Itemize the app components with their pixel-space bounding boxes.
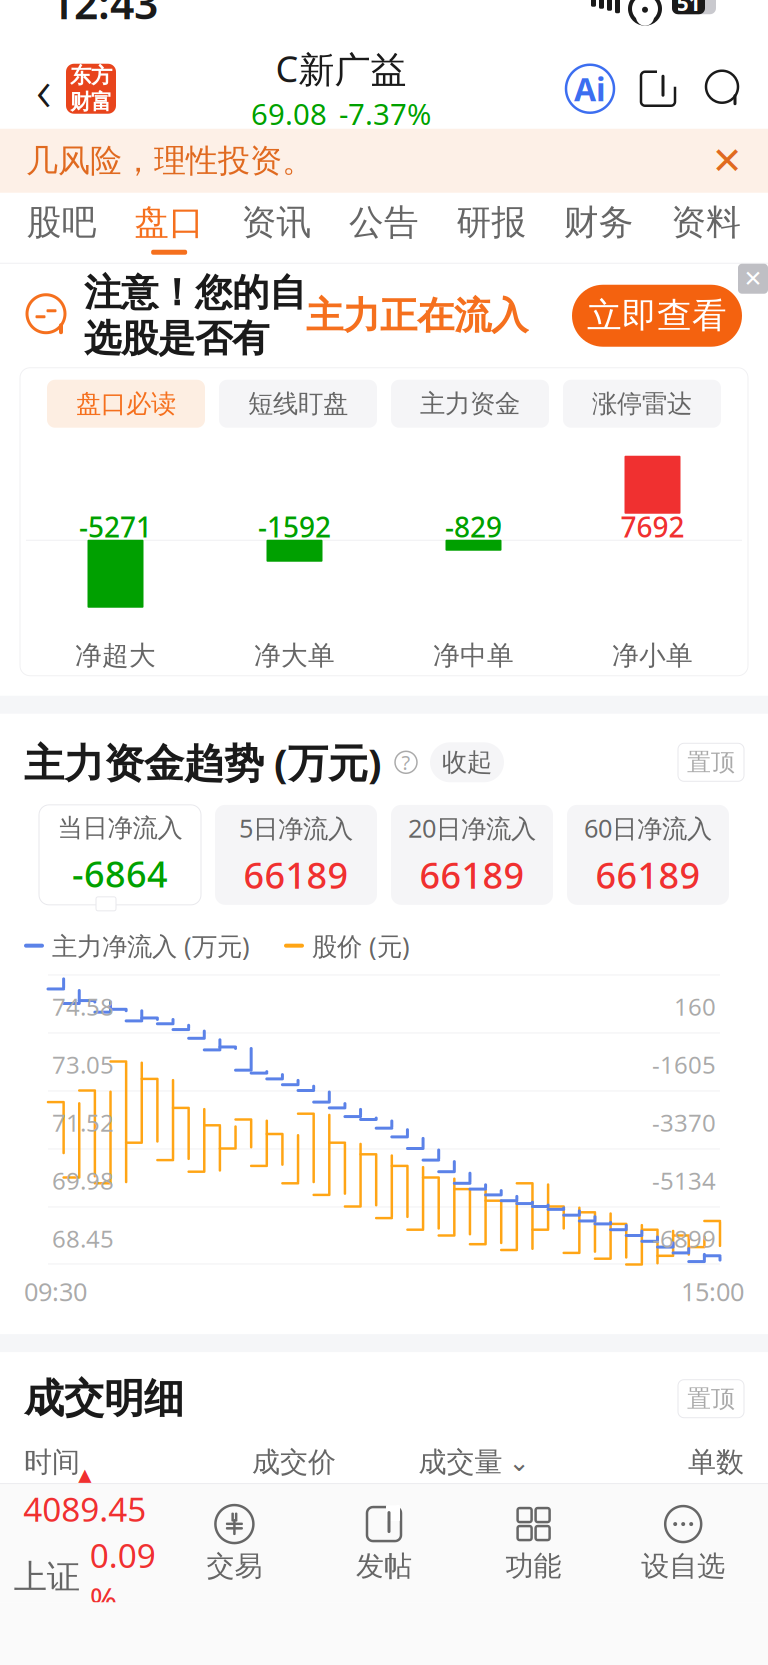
button[interactable]: Back <box>22 61 66 117</box>
staticText: 主力正在流入 <box>306 293 528 339</box>
staticText: 主力资金趋势 (万元) <box>24 736 382 789</box>
staticText: 立即查看 <box>587 294 727 337</box>
staticText: 09:30 <box>24 1274 87 1308</box>
staticText: 73.05 <box>52 1049 114 1080</box>
staticText: 涨停雷达 <box>592 388 692 419</box>
staticText: ▲ <box>78 1465 91 1485</box>
button[interactable]: AI assistant <box>566 65 614 113</box>
staticText: 盘口必读 <box>76 388 176 419</box>
staticText: 66189 <box>243 851 348 899</box>
button[interactable]: 立即查看 <box>572 285 742 347</box>
button[interactable]: ▲ <box>10 1488 160 1598</box>
staticText: 发帖 <box>356 1549 412 1583</box>
staticText: -5134 <box>652 1165 716 1196</box>
staticText: ? <box>401 749 410 776</box>
staticText: 资讯 <box>242 201 312 244</box>
staticText: -6899 <box>652 1223 716 1254</box>
staticText: 注意！您的自选股是否有 <box>84 270 306 362</box>
button[interactable]: 短线盯盘 <box>219 380 377 428</box>
staticText: -1592 <box>258 508 331 545</box>
staticText: 66189 <box>595 851 700 899</box>
staticText: 60日净流入 <box>584 811 712 845</box>
staticText: -829 <box>445 508 502 545</box>
staticText: 4089.45 <box>23 1487 146 1531</box>
button[interactable]: 收起 <box>430 742 504 782</box>
staticText: 公告 <box>349 201 419 244</box>
staticText: -6864 <box>72 849 168 897</box>
staticText: 成交明细 <box>24 1374 184 1423</box>
staticText: 时间 <box>24 1445 80 1479</box>
staticText: -1605 <box>652 1049 716 1080</box>
button[interactable]: Help <box>392 748 420 776</box>
button[interactable]: 资讯 <box>223 193 330 263</box>
staticText: 财务 <box>564 201 634 244</box>
button[interactable]: 财务 <box>545 193 652 263</box>
staticText: Ai <box>574 67 606 110</box>
staticText: 收起 <box>442 747 492 778</box>
button[interactable]: Search <box>702 67 746 111</box>
button[interactable]: 置顶 <box>678 743 744 781</box>
button[interactable]: 5日净流入 <box>215 805 377 905</box>
button[interactable]: 资料 <box>653 193 760 263</box>
staticText: 置顶 <box>687 1384 735 1413</box>
staticText: 净大单 <box>254 639 335 672</box>
staticText: 5日净流入 <box>239 811 353 845</box>
staticText: 15:00 <box>681 1274 744 1308</box>
staticText: 51 <box>676 0 700 17</box>
staticText: ✕ <box>711 139 742 182</box>
staticText: -7.37% <box>339 94 431 133</box>
staticText: ‹ <box>36 50 52 128</box>
staticText: 股吧 <box>27 201 97 244</box>
staticText: 20日净流入 <box>408 811 536 845</box>
button[interactable]: 当日净流入 <box>39 805 201 905</box>
staticText: 71.52 <box>52 1107 114 1138</box>
staticText: ✕ <box>743 266 762 292</box>
staticText: 交易 <box>206 1549 262 1583</box>
staticText: -3370 <box>652 1107 716 1138</box>
button[interactable]: 置顶 <box>678 1380 744 1418</box>
button[interactable]: 主力资金 <box>391 380 549 428</box>
button[interactable]: 涨停雷达 <box>563 380 721 428</box>
staticText: C新广益 <box>275 44 406 92</box>
staticText: 68.45 <box>52 1223 114 1254</box>
staticText: 主力资金 <box>420 388 520 419</box>
button[interactable]: 股吧 <box>8 193 115 263</box>
button[interactable]: Share <box>636 67 680 111</box>
button[interactable]: 公告 <box>330 193 438 263</box>
staticText: 69.98 <box>52 1165 114 1196</box>
staticText: 资料 <box>671 201 741 244</box>
staticText: 单数 <box>688 1445 744 1479</box>
staticText: 160 <box>674 991 716 1022</box>
button[interactable]: 发帖 <box>309 1495 459 1591</box>
staticText: 66189 <box>419 851 524 899</box>
staticText: 12:43 <box>50 0 158 31</box>
staticText: 置顶 <box>687 748 735 777</box>
staticText: 东方 <box>70 62 112 89</box>
button[interactable]: East Money home <box>66 64 116 114</box>
staticText: ⌄ <box>508 1448 529 1477</box>
staticText: 盘口 <box>134 201 204 244</box>
staticText: 74.58 <box>52 991 114 1022</box>
staticText: 成交价 <box>252 1445 336 1479</box>
button[interactable]: 设自选 <box>608 1495 758 1591</box>
staticText: -5271 <box>79 508 152 545</box>
button[interactable]: 60日净流入 <box>567 805 729 905</box>
button[interactable]: 盘口 <box>115 193 223 263</box>
staticText: 成交量 <box>418 1445 502 1479</box>
staticText: 短线盯盘 <box>248 388 348 419</box>
staticText: 当日净流入 <box>57 812 182 843</box>
staticText: 主力净流入 (万元) <box>52 929 250 962</box>
staticText: 财富 <box>70 89 112 115</box>
staticText: 净超大 <box>75 639 156 672</box>
button[interactable]: 20日净流入 <box>391 805 553 905</box>
staticText: 设自选 <box>641 1549 725 1583</box>
staticText: 净小单 <box>612 639 693 672</box>
button[interactable]: 功能 <box>459 1495 608 1591</box>
button[interactable]: 交易 <box>160 1495 309 1591</box>
button[interactable]: 盘口必读 <box>47 380 205 428</box>
button[interactable]: 成交量 <box>384 1445 564 1479</box>
button[interactable]: Dismiss risk notice <box>702 136 752 186</box>
staticText: 上证 <box>14 1557 80 1598</box>
button[interactable]: 研报 <box>438 193 545 263</box>
button[interactable]: Close advertisement <box>738 264 768 294</box>
